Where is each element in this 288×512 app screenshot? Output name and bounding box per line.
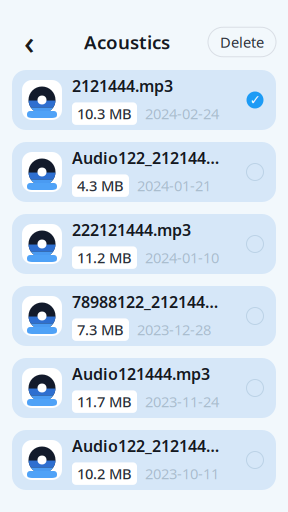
staticText: 2023-12-28 (137, 320, 211, 339)
staticText: Acoustics (84, 30, 170, 54)
button[interactable]: 2121444.mp3 (12, 70, 276, 130)
staticText: 2024-01-10 (145, 248, 219, 267)
staticText: ✓ (249, 92, 260, 107)
staticText: Audio121444.mp3 (72, 363, 210, 384)
staticText: 7.3 MB (77, 320, 124, 339)
staticText: 222121444.mp3 (72, 219, 191, 240)
staticText: 10.3 MB (77, 104, 132, 123)
staticText: 2024-02-24 (145, 104, 219, 123)
staticText: Audio122_2121444.mp3 (72, 435, 220, 456)
staticText: 11.7 MB (77, 392, 132, 411)
staticText: 78988122_2121444.mp3 (72, 291, 220, 312)
button[interactable]: Delete (208, 27, 276, 57)
staticText: 2024-01-21 (137, 176, 211, 195)
staticText: 2023-11-24 (145, 392, 219, 411)
button[interactable]: Audio121444.mp3 (12, 358, 276, 418)
staticText: ‹ (24, 21, 34, 63)
staticText: 2023-10-11 (145, 464, 219, 483)
staticText: 2121444.mp3 (72, 75, 173, 96)
button[interactable]: Audio122_21214444.... (12, 142, 276, 202)
staticText: 4.3 MB (77, 176, 124, 195)
button[interactable]: 222121444.mp3 (12, 214, 276, 274)
staticText: 10.2 MB (77, 464, 132, 483)
button[interactable]: Back (12, 25, 46, 59)
staticText: Delete (220, 32, 264, 52)
button[interactable]: Audio122_2121444.mp3 (12, 430, 276, 490)
staticText: 11.2 MB (77, 248, 132, 267)
staticText: Audio122_21214444.... (72, 147, 220, 168)
button[interactable]: 78988122_2121444.mp3 (12, 286, 276, 346)
